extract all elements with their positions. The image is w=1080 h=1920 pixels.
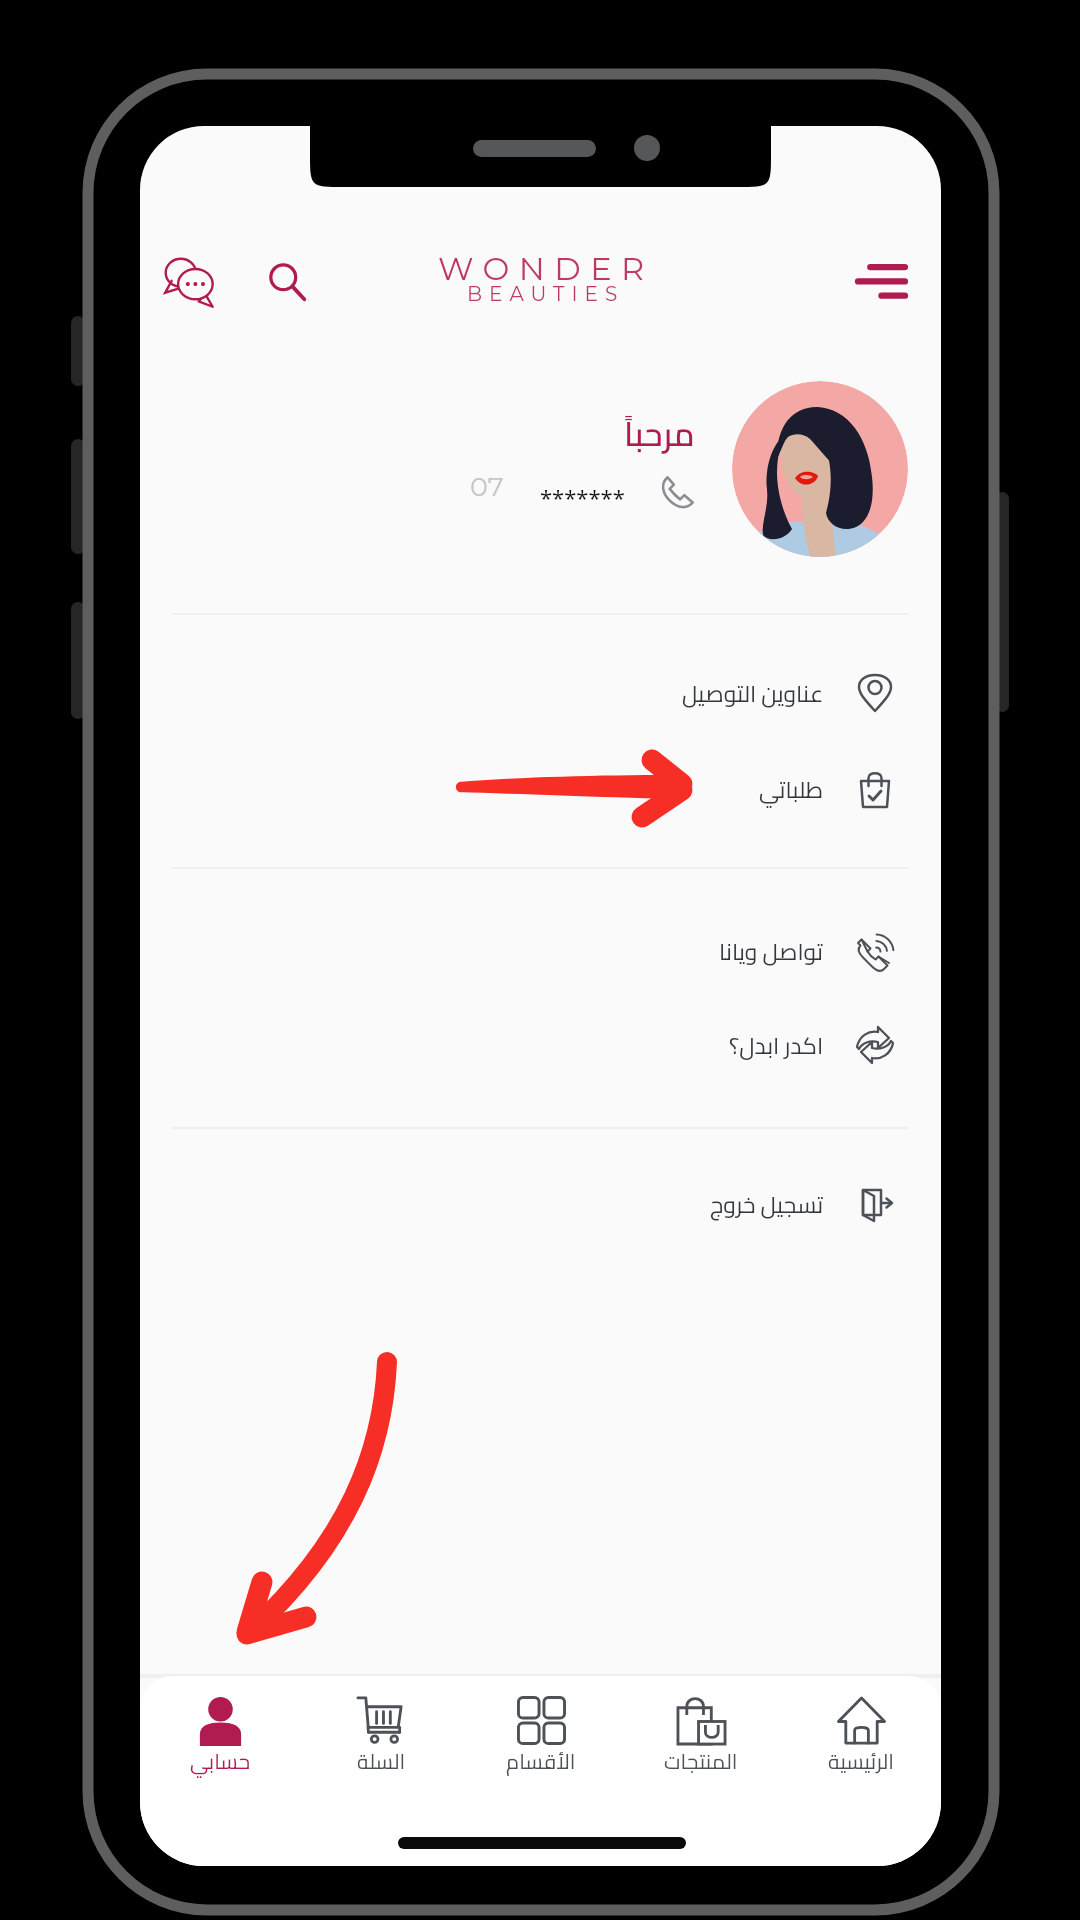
staticText: WONDER	[438, 249, 654, 288]
button[interactable]: المنتجات	[621, 1695, 781, 1785]
button[interactable]: اكدر ابدل؟	[140, 997, 941, 1093]
button[interactable]: تواصل ويانا	[140, 903, 941, 999]
button[interactable]: السلة	[301, 1695, 461, 1785]
button[interactable]: Chat	[156, 249, 224, 317]
staticText: الرئيسية	[828, 1742, 894, 1781]
button[interactable]: Menu	[845, 251, 917, 323]
button[interactable]: تسجيل خروج	[140, 1156, 941, 1252]
staticText: الأقسام	[506, 1742, 576, 1781]
button[interactable]: الأقسام	[461, 1695, 621, 1785]
staticText: المنتجات	[664, 1742, 738, 1781]
button[interactable]: Search	[257, 252, 321, 316]
staticText: BEAUTIES	[467, 282, 625, 306]
staticText: مرحباً	[624, 403, 695, 465]
staticText: *******	[540, 482, 625, 512]
staticText: طلباتي	[759, 768, 824, 811]
staticText: السلة	[357, 1742, 406, 1781]
staticText: حسابي	[190, 1742, 251, 1781]
button[interactable]: الرئيسية	[781, 1695, 941, 1785]
button[interactable]: عناوين التوصيل	[140, 645, 941, 741]
staticText: تواصل ويانا	[719, 930, 824, 973]
button[interactable]: طلباتي	[140, 741, 941, 837]
staticText: عناوين التوصيل	[682, 672, 824, 715]
staticText: تسجيل خروج	[710, 1183, 824, 1226]
staticText: اكدر ابدل؟	[729, 1024, 824, 1067]
staticText: 07	[470, 470, 504, 503]
button[interactable]: حسابي	[140, 1695, 301, 1785]
